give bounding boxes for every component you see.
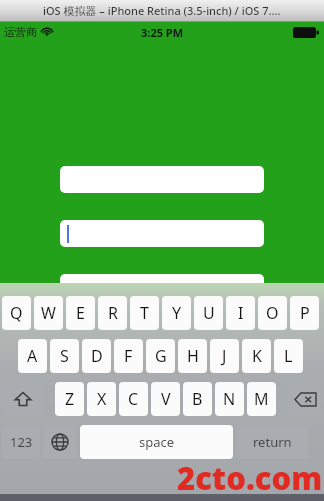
staticText: F bbox=[124, 345, 133, 367]
button[interactable]: N bbox=[215, 382, 244, 416]
button[interactable]: D bbox=[82, 339, 111, 373]
button[interactable]: 123 bbox=[2, 425, 40, 459]
staticText: H bbox=[187, 345, 199, 367]
button[interactable] bbox=[60, 220, 264, 247]
button[interactable]: Y bbox=[162, 296, 191, 330]
button[interactable]: X bbox=[87, 382, 116, 416]
button[interactable]: R bbox=[98, 296, 127, 330]
button[interactable]: A bbox=[18, 339, 47, 373]
staticText: K bbox=[252, 345, 262, 367]
button[interactable]: V bbox=[151, 382, 180, 416]
staticText: Z bbox=[65, 388, 75, 410]
button[interactable]: Z bbox=[55, 382, 84, 416]
staticText: L bbox=[284, 345, 293, 367]
button[interactable]: C bbox=[119, 382, 148, 416]
button[interactable]: G bbox=[146, 339, 175, 373]
staticText: U bbox=[203, 302, 215, 324]
staticText: V bbox=[161, 388, 171, 410]
button[interactable]: K bbox=[242, 339, 271, 373]
button[interactable]: O bbox=[258, 296, 287, 330]
button[interactable]: T bbox=[130, 296, 159, 330]
staticText: W bbox=[41, 302, 56, 324]
button[interactable]: return bbox=[236, 425, 308, 459]
staticText: 2cto.com bbox=[177, 457, 323, 499]
staticText: N bbox=[223, 388, 236, 410]
button[interactable]: F bbox=[114, 339, 143, 373]
button[interactable]: B bbox=[183, 382, 212, 416]
button[interactable]: Switch keyboard bbox=[43, 425, 77, 459]
staticText: B bbox=[192, 388, 203, 410]
button[interactable]: S bbox=[50, 339, 79, 373]
staticText: M bbox=[254, 388, 269, 410]
staticText: X bbox=[97, 388, 107, 410]
button[interactable]: P bbox=[290, 296, 319, 330]
staticText: I bbox=[238, 302, 244, 324]
button[interactable]: J bbox=[210, 339, 239, 373]
staticText: E bbox=[76, 302, 85, 324]
staticText: D bbox=[91, 345, 103, 367]
staticText: 123 bbox=[10, 433, 33, 451]
button[interactable]: Q bbox=[2, 296, 31, 330]
staticText: Q bbox=[10, 302, 23, 324]
button[interactable]: U bbox=[194, 296, 223, 330]
button[interactable]: Shift bbox=[2, 382, 43, 416]
staticText: Y bbox=[172, 302, 182, 324]
staticText: C bbox=[128, 388, 139, 410]
button[interactable] bbox=[60, 166, 264, 193]
staticText: space bbox=[139, 433, 175, 451]
button[interactable]: L bbox=[274, 339, 303, 373]
staticText: iOS 模拟器 – iPhone Retina (3.5-inch) / iOS… bbox=[43, 3, 281, 18]
button[interactable]: Delete bbox=[288, 382, 322, 416]
staticText: return bbox=[253, 433, 292, 451]
button[interactable] bbox=[60, 274, 264, 301]
staticText: 3:25 PM bbox=[141, 25, 184, 40]
staticText: P bbox=[300, 302, 310, 324]
button[interactable]: M bbox=[247, 382, 276, 416]
button[interactable]: space bbox=[80, 425, 233, 459]
staticText: G bbox=[155, 345, 167, 367]
staticText: S bbox=[60, 345, 69, 367]
button[interactable]: I bbox=[226, 296, 255, 330]
staticText: T bbox=[140, 302, 149, 324]
staticText: O bbox=[266, 302, 279, 324]
button[interactable]: H bbox=[178, 339, 207, 373]
button[interactable]: W bbox=[34, 296, 63, 330]
staticText: R bbox=[108, 302, 118, 324]
staticText: 运营商 bbox=[4, 25, 37, 39]
staticText: A bbox=[27, 345, 38, 367]
staticText: J bbox=[222, 345, 227, 367]
button[interactable]: E bbox=[66, 296, 95, 330]
